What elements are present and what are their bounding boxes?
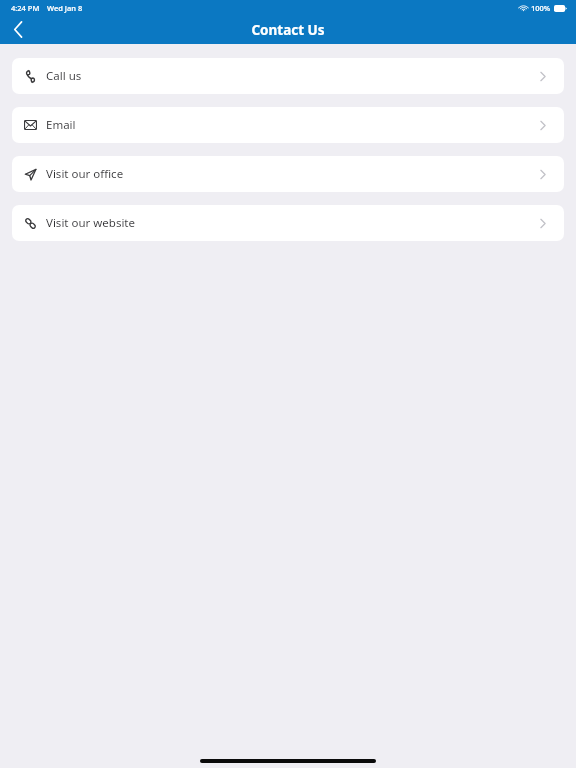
button[interactable]: Visit our website (12, 205, 564, 241)
button[interactable]: Back (0, 15, 36, 44)
staticText: Email (46, 117, 76, 133)
staticText: Visit our website (46, 215, 135, 231)
staticText: Call us (46, 68, 82, 84)
staticText: Contact Us (251, 21, 325, 39)
button[interactable]: Visit our office (12, 156, 564, 192)
staticText: Visit our office (46, 166, 124, 182)
button[interactable]: Email (12, 107, 564, 143)
button[interactable]: Call us (12, 58, 564, 94)
staticText: Wed Jan 8 (47, 3, 83, 13)
staticText: 4:24 PM (11, 3, 40, 13)
staticText: 100% (531, 3, 551, 13)
